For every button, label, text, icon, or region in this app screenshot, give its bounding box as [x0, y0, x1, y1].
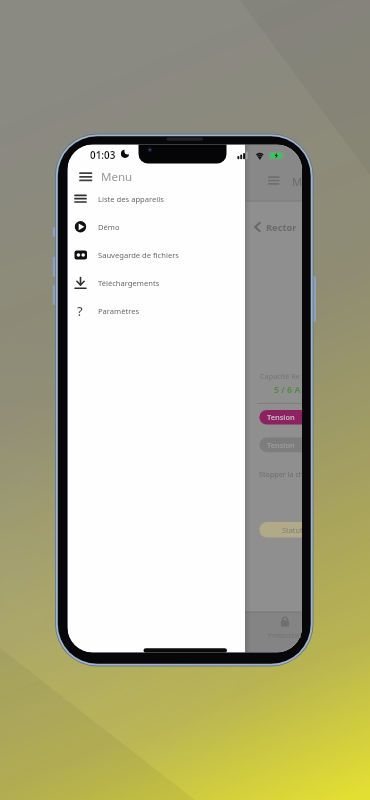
staticText: Sauvegarde de fichiers: [98, 250, 179, 260]
staticText: ?: [77, 303, 83, 320]
staticText: 5 / 6 A: [274, 384, 301, 396]
staticText: Tension: [267, 412, 295, 422]
staticText: Liste des appareils: [98, 194, 164, 204]
staticText: Statut: [282, 525, 302, 535]
button[interactable]: Sauvegarde de fichiers: [68, 241, 246, 269]
staticText: Téléchargements: [98, 278, 160, 288]
staticText: Stopper la char: [259, 469, 302, 479]
staticText: M: [292, 174, 303, 189]
button[interactable]: Démo: [68, 213, 246, 241]
staticText: Paramètres: [98, 306, 140, 316]
staticText: Protections: [268, 631, 302, 640]
staticText: Menu: [101, 169, 133, 185]
staticText: Capacité Re: [260, 371, 300, 381]
staticText: Démo: [98, 222, 120, 232]
button[interactable]: Liste des appareils: [68, 185, 246, 213]
staticText: 01:03: [90, 148, 116, 161]
button[interactable]: [73, 165, 99, 189]
button[interactable]: Paramètres: [68, 297, 246, 325]
staticText: Rector: [266, 221, 297, 234]
staticText: Tension: [267, 440, 295, 450]
button[interactable]: Téléchargements: [68, 269, 246, 297]
